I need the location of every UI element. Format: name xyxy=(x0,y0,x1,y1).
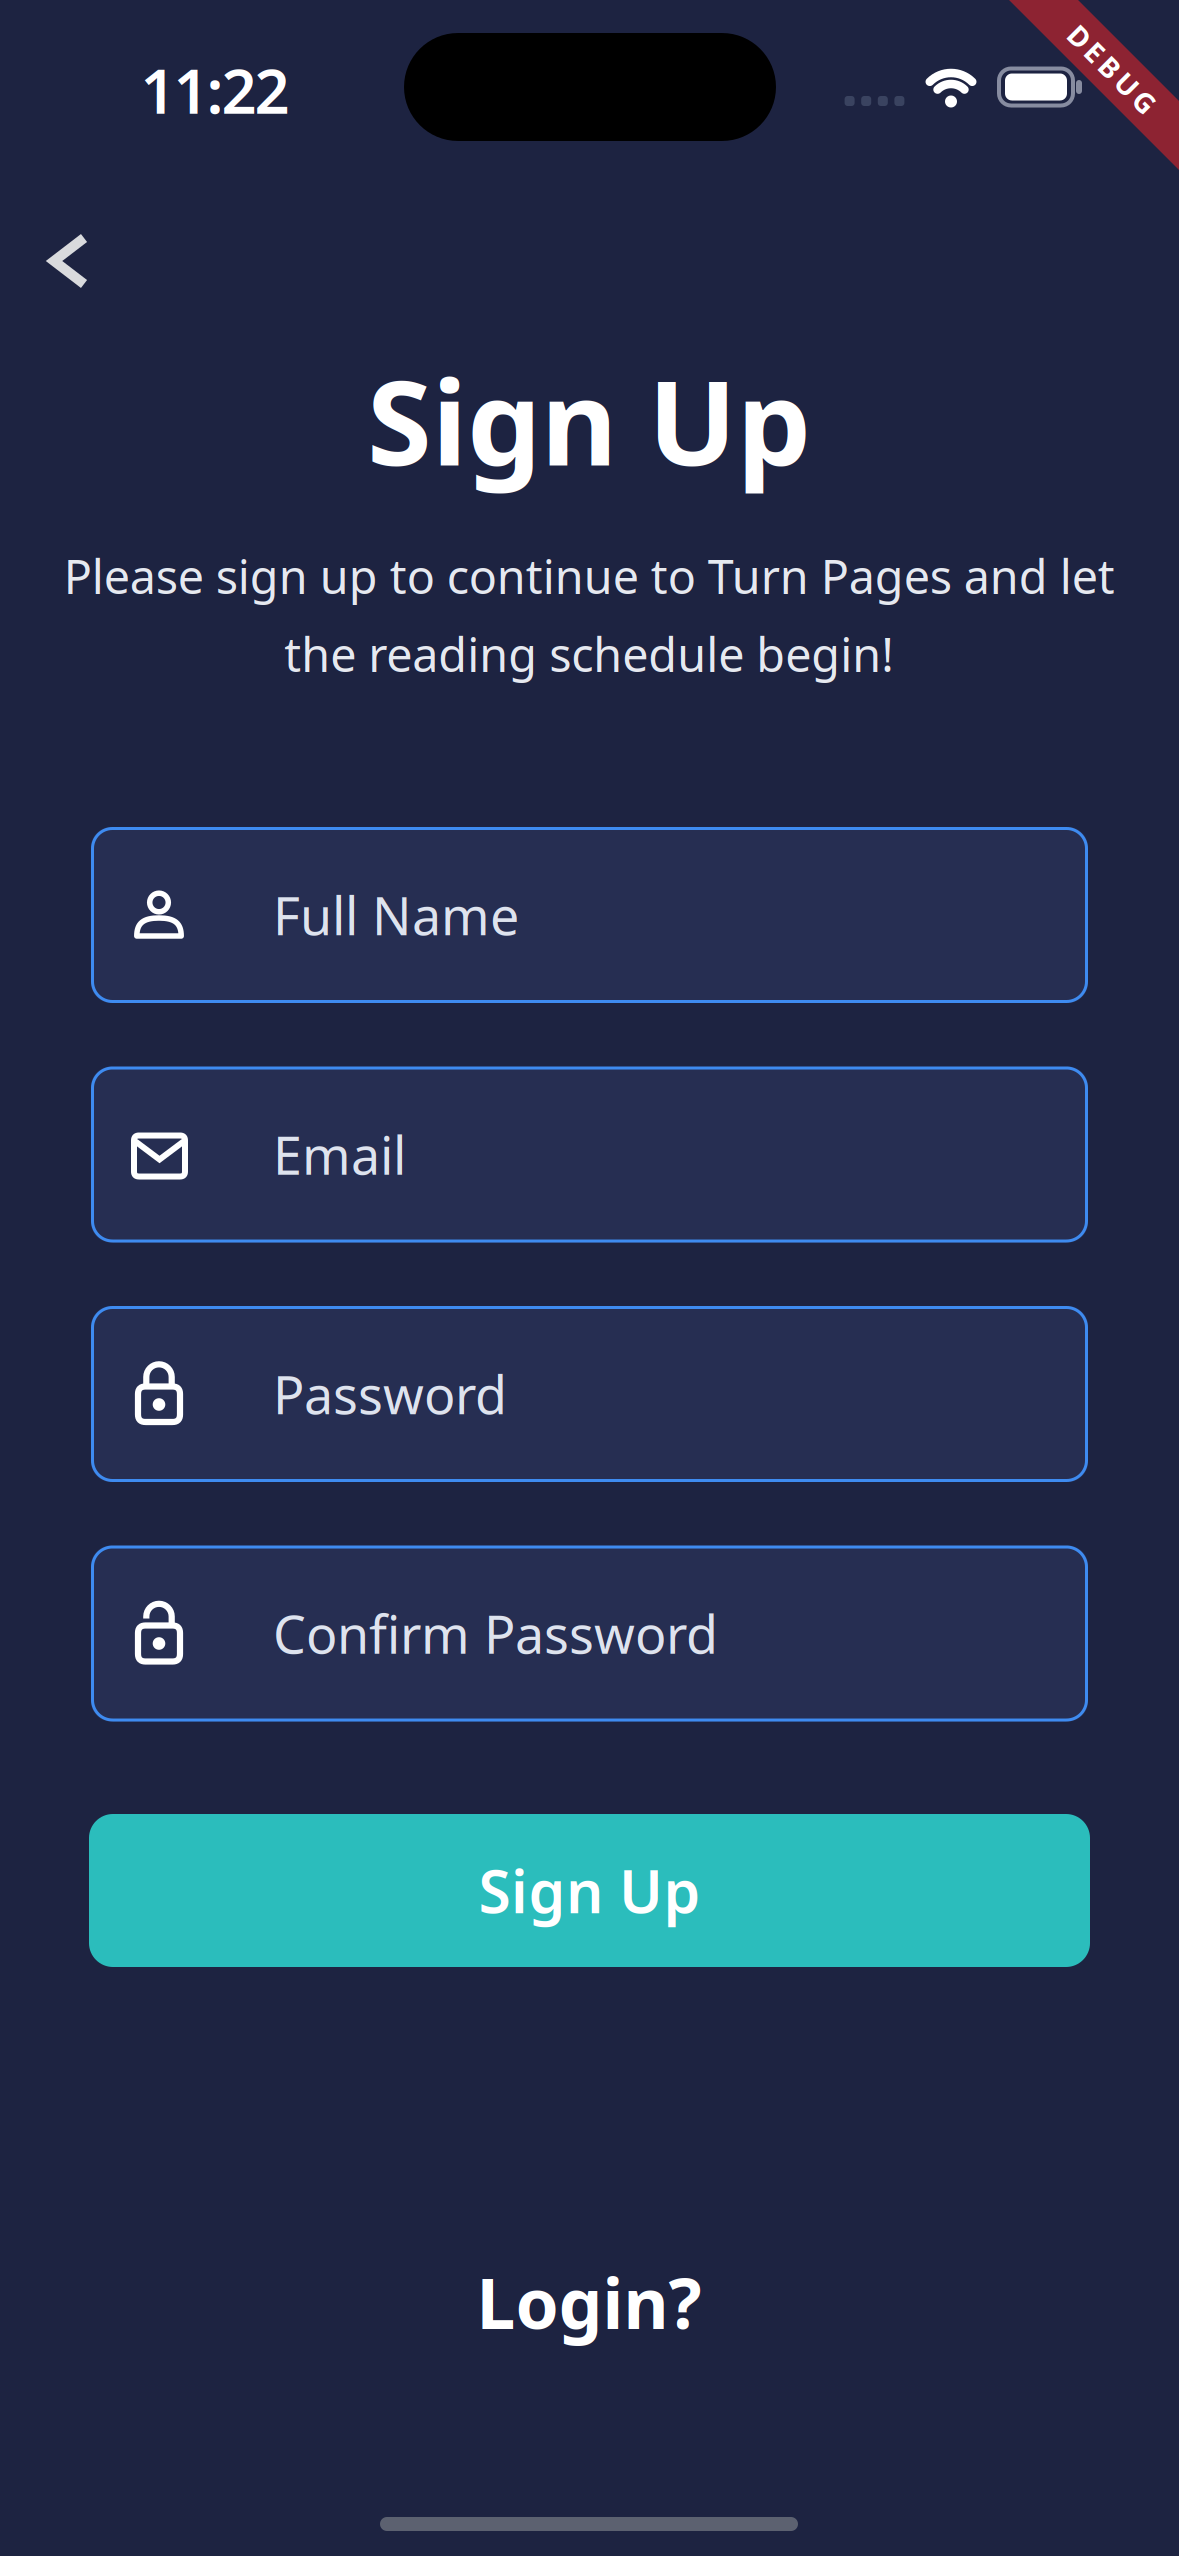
staticText: Confirm Password xyxy=(273,1599,718,1668)
staticText: 11:22 xyxy=(140,49,289,131)
button[interactable]: Login? xyxy=(466,2246,711,2358)
staticText: Sign Up xyxy=(478,1851,700,1929)
button[interactable]: Confirm Password xyxy=(91,1545,1088,1721)
staticText: Sign Up xyxy=(367,342,811,498)
staticText: Email xyxy=(273,1120,406,1189)
button[interactable]: Sign Up xyxy=(89,1814,1090,1967)
button[interactable]: Password xyxy=(91,1306,1088,1482)
button[interactable] xyxy=(40,233,98,289)
staticText: Login? xyxy=(476,2256,701,2348)
staticText: DEBUG xyxy=(1056,50,1168,88)
button[interactable]: Full Name xyxy=(91,827,1088,1003)
staticText: Password xyxy=(273,1359,507,1429)
staticText: Full Name xyxy=(273,880,519,950)
button[interactable]: Email xyxy=(91,1066,1088,1242)
staticText: Please sign up to continue to Turn Pages… xyxy=(63,545,1114,685)
